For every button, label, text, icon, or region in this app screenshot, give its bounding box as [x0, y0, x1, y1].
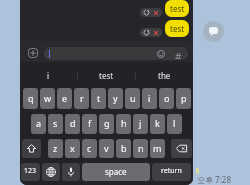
staticText: w	[44, 92, 52, 104]
staticText: v	[104, 142, 109, 154]
button[interactable]: test	[165, 20, 189, 37]
button[interactable]: Emoji	[44, 47, 188, 60]
button[interactable]: v	[99, 139, 114, 158]
button[interactable]: Switch language	[42, 163, 60, 181]
other: Cancel	[154, 31, 158, 35]
button[interactable]: Retry	[140, 28, 162, 37]
other: Retry	[144, 30, 149, 35]
button[interactable]: g	[99, 114, 114, 134]
button[interactable]: i	[142, 88, 157, 109]
staticText: i	[47, 70, 50, 81]
button[interactable]: p	[176, 88, 191, 109]
button[interactable]: y	[108, 88, 123, 109]
staticText: test	[170, 3, 185, 14]
staticText: u	[130, 92, 136, 104]
staticText: #	[175, 50, 182, 59]
staticText: q	[28, 92, 34, 104]
staticText: l	[173, 117, 176, 129]
button[interactable]: 123	[21, 163, 40, 181]
button[interactable]: f	[82, 114, 97, 134]
staticText: i	[148, 92, 151, 104]
button[interactable]: test	[165, 0, 189, 17]
staticText: s	[53, 117, 58, 129]
staticText: return	[161, 166, 182, 176]
button[interactable]: m	[150, 139, 165, 158]
staticText: e	[62, 92, 68, 104]
staticText: b	[121, 142, 127, 154]
staticText: z	[53, 142, 58, 154]
staticText: test	[99, 70, 114, 81]
button[interactable]: e	[57, 88, 72, 109]
button[interactable]: j	[133, 114, 148, 134]
button[interactable]: u	[125, 88, 140, 109]
button[interactable]: r	[74, 88, 89, 109]
staticText: test	[170, 23, 185, 34]
button[interactable]: a	[31, 114, 46, 134]
staticText: 오후 7:28	[197, 174, 231, 185]
staticText: the	[158, 70, 171, 81]
staticText: y	[113, 92, 118, 104]
button[interactable]: d	[65, 114, 80, 134]
staticText: g	[104, 117, 110, 129]
staticText: j	[139, 117, 142, 129]
button[interactable]: o	[159, 88, 174, 109]
staticText: m	[153, 142, 162, 154]
staticText: d	[70, 117, 76, 129]
staticText: a	[36, 117, 42, 129]
staticText: 123	[24, 166, 37, 176]
button[interactable]: z	[48, 139, 63, 158]
button[interactable]: the	[136, 64, 193, 87]
staticText: space	[105, 166, 127, 177]
button[interactable]: x	[65, 139, 80, 158]
staticText: n	[138, 142, 144, 154]
button[interactable]: t	[91, 88, 106, 109]
button[interactable]: q	[23, 88, 38, 109]
button[interactable]: Retry	[140, 8, 162, 17]
staticText: x	[70, 142, 75, 154]
button[interactable]: s	[48, 114, 63, 134]
button[interactable]: b	[116, 139, 131, 158]
button[interactable]: Emoji	[157, 50, 165, 58]
button[interactable]: Backspace	[171, 139, 192, 158]
button[interactable]: Shift	[22, 139, 41, 158]
staticText: f	[88, 117, 92, 129]
button[interactable]: i	[20, 64, 77, 87]
button[interactable]: n	[133, 139, 148, 158]
button[interactable]: Voice input	[62, 163, 80, 181]
staticText: o	[164, 92, 170, 104]
other: Cancel	[154, 11, 158, 15]
button[interactable]: l	[167, 114, 182, 134]
staticText: t	[97, 92, 101, 104]
button[interactable]: return	[152, 163, 191, 181]
staticText: h	[121, 117, 127, 129]
button[interactable]: c	[82, 139, 97, 158]
button[interactable]: w	[40, 88, 55, 109]
button[interactable]: Hashtag	[174, 50, 183, 59]
staticText: c	[87, 142, 92, 154]
button[interactable]: Add attachment	[28, 48, 38, 58]
button[interactable]: test	[78, 64, 135, 87]
staticText: k	[155, 117, 160, 129]
button[interactable]: h	[116, 114, 131, 134]
staticText: p	[181, 92, 187, 104]
button[interactable]: k	[150, 114, 165, 134]
button[interactable]: Chat bubble	[203, 21, 224, 42]
other: Retry	[144, 10, 149, 15]
staticText: r	[80, 92, 84, 104]
button[interactable]: space	[82, 163, 150, 181]
